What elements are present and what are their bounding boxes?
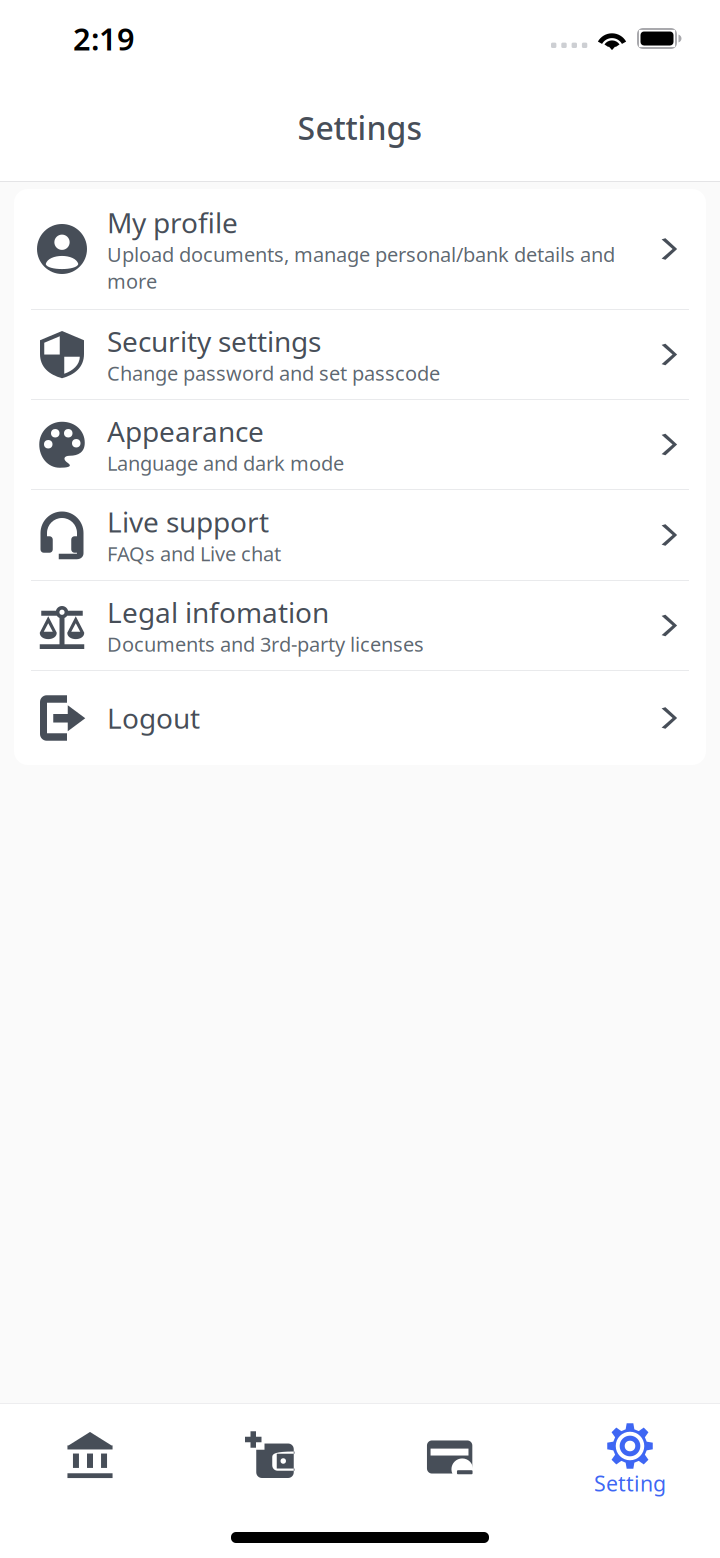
staticText: FAQs and Live chat	[107, 540, 281, 567]
staticText: Security settings	[107, 323, 321, 360]
staticText: Language and dark mode	[107, 450, 344, 476]
staticText: Legal infomation	[107, 594, 329, 631]
staticText: 2:19	[73, 18, 135, 59]
staticText: My profile	[107, 204, 238, 241]
staticText: Setting	[594, 1469, 666, 1497]
staticText: Upload documents, manage personal/bank d…	[107, 241, 615, 294]
button[interactable]: Cards	[360, 1404, 540, 1504]
button[interactable]: Setting	[540, 1404, 720, 1504]
staticText: Change password and set passcode	[107, 360, 440, 386]
button[interactable]: Security settings	[14, 310, 706, 399]
button[interactable]: Accounts	[0, 1404, 180, 1504]
staticText: Logout	[107, 699, 200, 737]
staticText: Settings	[297, 106, 422, 149]
staticText: Live support	[107, 503, 269, 540]
button[interactable]: My profile	[14, 189, 706, 309]
staticText: Appearance	[107, 413, 264, 450]
staticText: Documents and 3rd-party licenses	[107, 631, 424, 657]
button[interactable]: Logout	[14, 671, 706, 765]
button[interactable]: Live support	[14, 490, 706, 580]
button[interactable]: Appearance	[14, 400, 706, 489]
button[interactable]: Add money	[180, 1404, 360, 1504]
button[interactable]: Legal infomation	[14, 581, 706, 670]
